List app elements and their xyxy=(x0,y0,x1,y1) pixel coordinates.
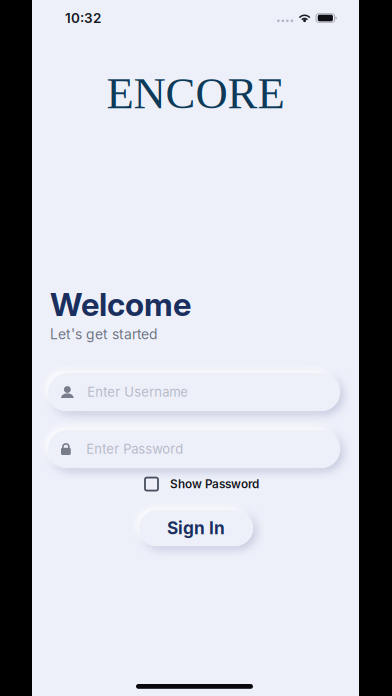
staticText: Let's get started xyxy=(50,326,157,342)
button[interactable]: Enter Username xyxy=(48,373,340,411)
staticText: Welcome xyxy=(50,285,191,324)
staticText: Enter Password xyxy=(86,441,183,457)
staticText: 10:32 xyxy=(65,10,101,26)
button[interactable]: Show Password xyxy=(145,477,259,491)
button[interactable]: Sign In xyxy=(139,510,253,546)
staticText: Show Password xyxy=(170,477,259,491)
staticText: Enter Username xyxy=(87,384,188,400)
staticText: Sign In xyxy=(167,518,225,538)
button[interactable]: Enter Password xyxy=(48,430,340,468)
staticText: ENCORE xyxy=(106,68,284,118)
